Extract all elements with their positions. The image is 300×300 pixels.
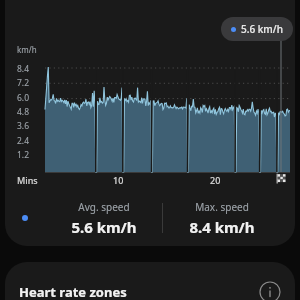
staticText: 1.2	[17, 149, 30, 161]
staticText: 8.4	[17, 63, 30, 75]
staticText: Avg. speed	[78, 200, 130, 214]
staticText: 10	[113, 174, 124, 186]
button[interactable]: Max. speed	[163, 200, 281, 237]
button[interactable]: Info about heart rate zones	[259, 281, 281, 300]
button[interactable]: Heart rate zones	[5, 262, 295, 300]
other: Finish	[275, 172, 287, 184]
staticText: Max. speed	[195, 200, 249, 214]
staticText: km/h	[17, 44, 37, 55]
staticText: 20	[210, 174, 221, 186]
staticText: 8.4 km/h	[189, 217, 255, 237]
staticText: 7.2	[17, 77, 30, 89]
staticText: 2.4	[17, 135, 30, 147]
staticText: 5.6 km/h	[241, 22, 283, 36]
staticText: Mins	[17, 174, 38, 186]
staticText: 4.8	[17, 106, 30, 118]
staticText: Heart rate zones	[19, 283, 127, 300]
staticText: 6.0	[17, 92, 30, 104]
staticText: 5.6 km/h	[71, 217, 137, 237]
staticText: 3.6	[17, 120, 30, 132]
button[interactable]: 5.6 km/h	[221, 17, 293, 41]
button[interactable]: Avg. speed	[45, 200, 162, 237]
